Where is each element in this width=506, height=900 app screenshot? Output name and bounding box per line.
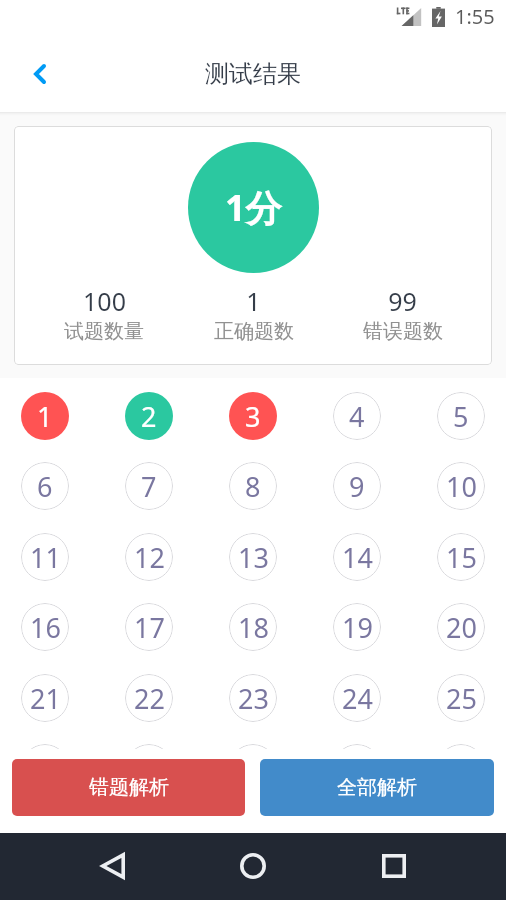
staticText: 27 <box>134 750 165 787</box>
button[interactable]: 全部解析 <box>260 759 494 816</box>
staticText: 8 <box>245 468 261 505</box>
button[interactable]: Back <box>89 842 137 890</box>
staticText: 1分 <box>225 183 282 232</box>
staticText: 22 <box>134 680 165 717</box>
button[interactable]: 11 <box>21 533 69 581</box>
button[interactable]: 30 <box>437 744 485 792</box>
staticText: 100 <box>83 284 126 318</box>
staticText: 6 <box>37 468 53 505</box>
staticText: 10 <box>446 468 477 505</box>
button[interactable]: 错题解析 <box>12 759 245 816</box>
button[interactable]: 25 <box>437 674 485 722</box>
button[interactable]: 12 <box>125 533 173 581</box>
staticText: 1 <box>37 398 53 435</box>
staticText: 99 <box>388 284 417 318</box>
staticText: 12 <box>134 539 165 576</box>
button[interactable]: 9 <box>333 462 381 510</box>
button[interactable]: 26 <box>21 744 69 792</box>
staticText: 4 <box>349 398 365 435</box>
staticText: 17 <box>134 609 165 646</box>
staticText: 2 <box>141 398 157 435</box>
button[interactable]: 16 <box>21 603 69 651</box>
button[interactable]: 27 <box>125 744 173 792</box>
staticText: 20 <box>446 609 477 646</box>
staticText: 全部解析 <box>337 775 417 800</box>
staticText: 试题数量 <box>64 319 144 344</box>
button[interactable]: 14 <box>333 533 381 581</box>
button[interactable]: Home <box>229 842 277 890</box>
staticText: 23 <box>238 680 269 717</box>
staticText: 30 <box>446 750 477 787</box>
staticText: 错误题数 <box>363 319 443 344</box>
staticText: 29 <box>342 750 373 787</box>
staticText: 错题解析 <box>89 775 169 800</box>
staticText: 9 <box>349 468 365 505</box>
staticText: 28 <box>238 750 269 787</box>
button[interactable]: 17 <box>125 603 173 651</box>
staticText: 11 <box>30 539 61 576</box>
staticText: 1:55 <box>455 3 495 30</box>
button[interactable]: 24 <box>333 674 381 722</box>
button[interactable]: 4 <box>333 392 381 440</box>
staticText: 测试结果 <box>205 59 301 89</box>
button[interactable]: 15 <box>437 533 485 581</box>
button[interactable]: 29 <box>333 744 381 792</box>
button[interactable]: 13 <box>229 533 277 581</box>
staticText: 14 <box>342 539 373 576</box>
staticText: 15 <box>446 539 477 576</box>
button[interactable]: 3 <box>229 392 277 440</box>
button[interactable]: 19 <box>333 603 381 651</box>
staticText: 5 <box>453 398 469 435</box>
staticText: 正确题数 <box>214 319 294 344</box>
button[interactable]: 2 <box>125 392 173 440</box>
staticText: 25 <box>446 680 477 717</box>
staticText: 7 <box>141 468 157 505</box>
button[interactable]: 18 <box>229 603 277 651</box>
button[interactable]: 7 <box>125 462 173 510</box>
staticText: 19 <box>342 609 373 646</box>
staticText: 1 <box>246 284 261 318</box>
staticText: 26 <box>30 750 61 787</box>
staticText: 21 <box>30 680 61 717</box>
button[interactable]: 28 <box>229 744 277 792</box>
staticText: 16 <box>30 609 61 646</box>
staticText: 18 <box>238 609 269 646</box>
staticText: 3 <box>245 398 261 435</box>
button[interactable]: 6 <box>21 462 69 510</box>
button[interactable]: 22 <box>125 674 173 722</box>
button[interactable]: 23 <box>229 674 277 722</box>
button[interactable]: 10 <box>437 462 485 510</box>
button[interactable]: 8 <box>229 462 277 510</box>
button[interactable]: 20 <box>437 603 485 651</box>
button[interactable]: Recent apps <box>370 842 418 890</box>
button[interactable]: 1 <box>21 392 69 440</box>
button[interactable]: Back <box>18 52 62 96</box>
staticText: 24 <box>342 680 373 717</box>
button[interactable]: 21 <box>21 674 69 722</box>
button[interactable]: 5 <box>437 392 485 440</box>
staticText: 13 <box>238 539 269 576</box>
